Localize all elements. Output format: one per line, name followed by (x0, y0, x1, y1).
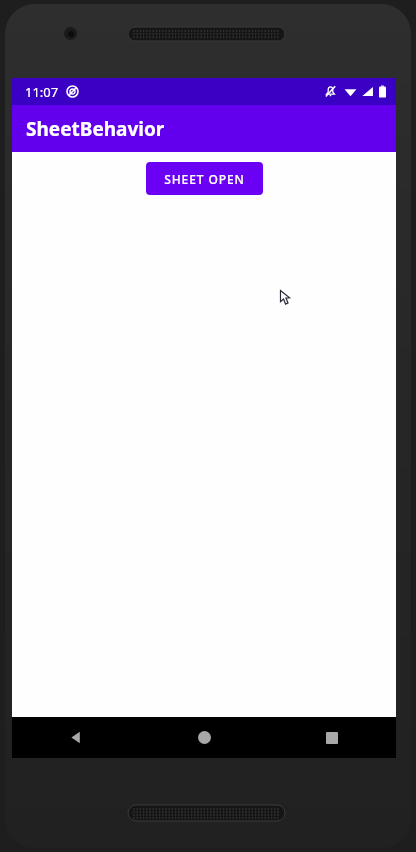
button[interactable]: Recent apps (268, 717, 396, 758)
staticText: 11:07 (25, 83, 59, 101)
staticText: SheetBehavior (26, 116, 165, 142)
button[interactable]: Home (140, 717, 268, 758)
button[interactable]: Back (12, 717, 140, 758)
button[interactable]: SHEET OPEN (146, 162, 263, 195)
staticText: SHEET OPEN (164, 171, 245, 187)
